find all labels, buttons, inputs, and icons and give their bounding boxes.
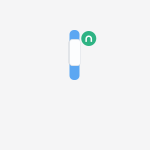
button[interactable]: Device status <box>55 45 95 105</box>
